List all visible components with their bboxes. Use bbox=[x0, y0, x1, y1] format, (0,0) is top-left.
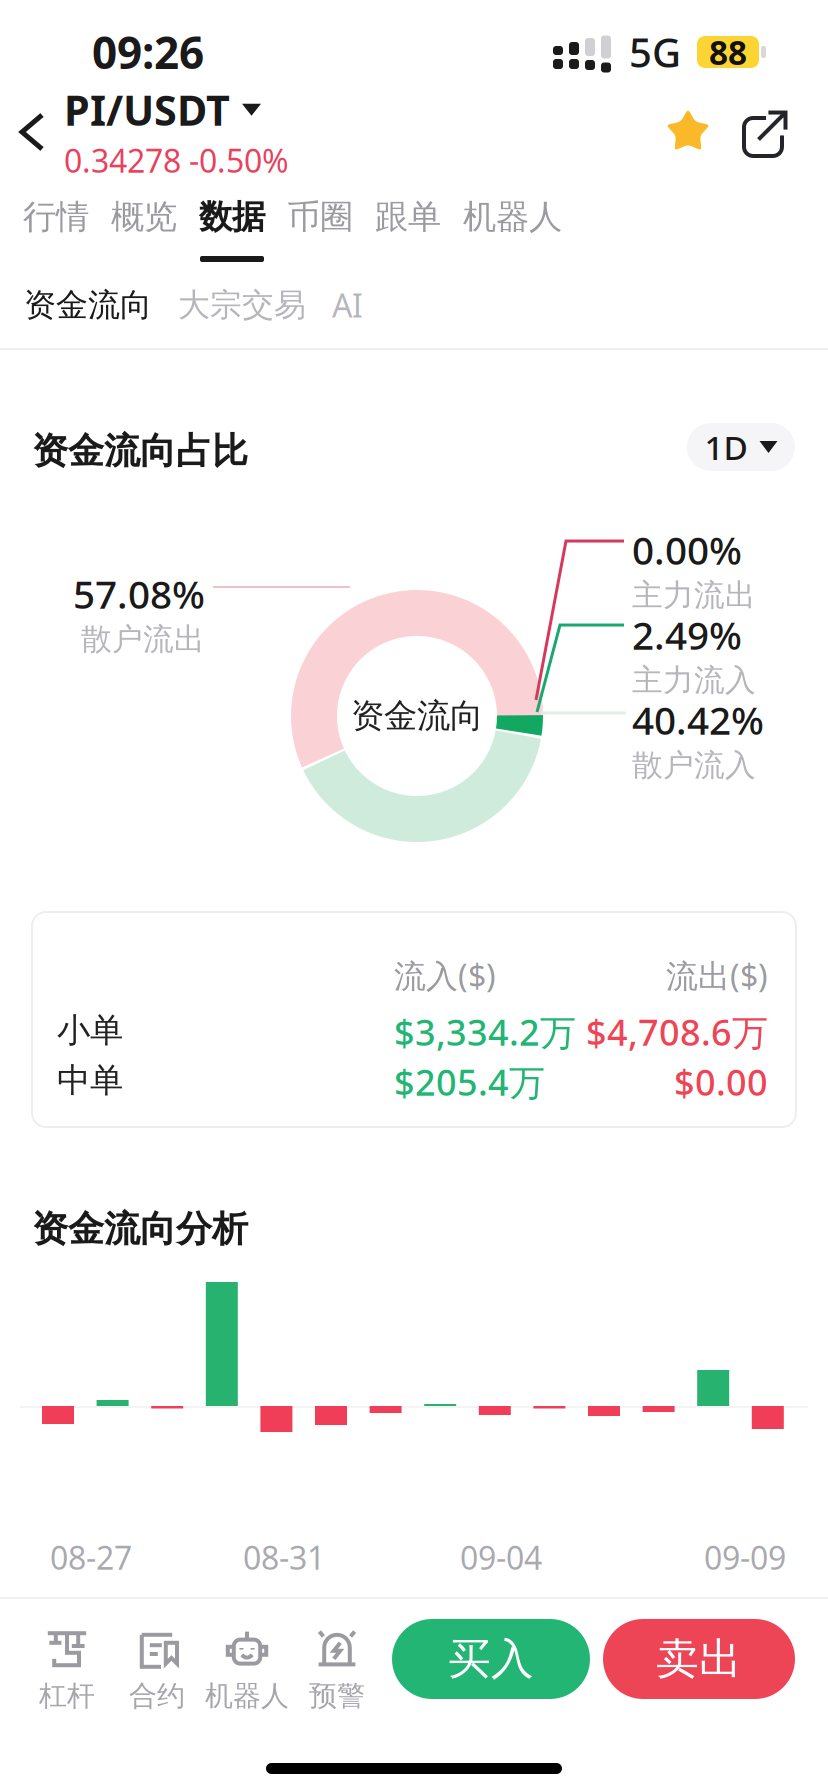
staticText: 资金流向 bbox=[351, 695, 483, 736]
button[interactable]: 数据 bbox=[188, 191, 276, 262]
staticText: 卖出 bbox=[656, 1633, 742, 1685]
staticText: $4,708.6万 bbox=[586, 1008, 768, 1056]
staticText: 2.49% bbox=[632, 609, 742, 660]
staticText: 88 bbox=[709, 30, 747, 74]
staticText: 散户流出 bbox=[81, 620, 205, 658]
staticText: 09-09 bbox=[704, 1536, 786, 1578]
staticText: 流入($) bbox=[394, 954, 496, 996]
button[interactable]: 机器人 bbox=[452, 191, 573, 262]
staticText: $205.4万 bbox=[394, 1058, 545, 1106]
staticText: 5G bbox=[629, 25, 681, 78]
staticText: 散户流入 bbox=[632, 746, 756, 784]
button[interactable]: 机器人 bbox=[202, 1598, 292, 1720]
staticText: 小单 bbox=[57, 1010, 123, 1051]
staticText: 大宗交易 bbox=[178, 285, 306, 325]
staticText: 合约 bbox=[129, 1679, 185, 1713]
button[interactable]: 预警 bbox=[292, 1598, 382, 1720]
staticText: 08-27 bbox=[50, 1536, 132, 1578]
staticText: PI/USDT bbox=[64, 82, 230, 137]
staticText: 主力流入 bbox=[632, 661, 756, 699]
staticText: 机器人 bbox=[463, 196, 562, 237]
staticText: 预警 bbox=[309, 1679, 365, 1713]
button[interactable]: 1D bbox=[687, 423, 795, 471]
staticText: 数据 bbox=[199, 196, 265, 237]
staticText: 流出($) bbox=[666, 954, 768, 996]
staticText: 中单 bbox=[57, 1060, 123, 1101]
staticText: 0.00% bbox=[632, 524, 742, 575]
staticText: 09-04 bbox=[460, 1536, 542, 1578]
button[interactable]: 杠杆 bbox=[22, 1598, 112, 1720]
staticText: 资金流向分析 bbox=[32, 1207, 248, 1251]
button[interactable]: Back bbox=[0, 97, 64, 167]
staticText: 57.08% bbox=[73, 568, 205, 619]
button[interactable]: Share bbox=[738, 103, 796, 161]
staticText: 1D bbox=[704, 425, 747, 469]
button[interactable]: 合约 bbox=[112, 1598, 202, 1720]
staticText: 跟单 bbox=[375, 196, 441, 237]
staticText: 机器人 bbox=[205, 1679, 289, 1713]
staticText: 行情 bbox=[23, 196, 89, 237]
staticText: 资金流向占比 bbox=[32, 429, 248, 473]
staticText: $0.00 bbox=[674, 1058, 768, 1106]
button[interactable]: 行情 bbox=[12, 191, 100, 262]
button[interactable]: 资金流向 bbox=[11, 273, 165, 337]
button[interactable]: 跟单 bbox=[364, 191, 452, 262]
staticText: 杠杆 bbox=[39, 1679, 95, 1713]
staticText: 概览 bbox=[111, 196, 177, 237]
button[interactable]: 概览 bbox=[100, 191, 188, 262]
button[interactable]: 大宗交易 bbox=[165, 273, 319, 337]
staticText: $3,334.2万 bbox=[394, 1008, 576, 1056]
staticText: 0.34278 -0.50% bbox=[64, 139, 289, 182]
button[interactable]: 卖出 bbox=[603, 1619, 795, 1699]
staticText: 买入 bbox=[448, 1633, 534, 1685]
button[interactable]: 币圈 bbox=[276, 191, 364, 262]
staticText: 08-31 bbox=[243, 1536, 325, 1578]
staticText: AI bbox=[332, 284, 363, 326]
staticText: 09:26 bbox=[92, 23, 204, 81]
staticText: 币圈 bbox=[287, 196, 353, 237]
staticText: 主力流出 bbox=[632, 576, 756, 614]
button[interactable]: AI bbox=[319, 272, 376, 338]
button[interactable]: 买入 bbox=[392, 1619, 590, 1699]
staticText: 资金流向 bbox=[24, 285, 152, 325]
button[interactable]: Favorite bbox=[654, 99, 722, 165]
staticText: 40.42% bbox=[632, 694, 764, 745]
